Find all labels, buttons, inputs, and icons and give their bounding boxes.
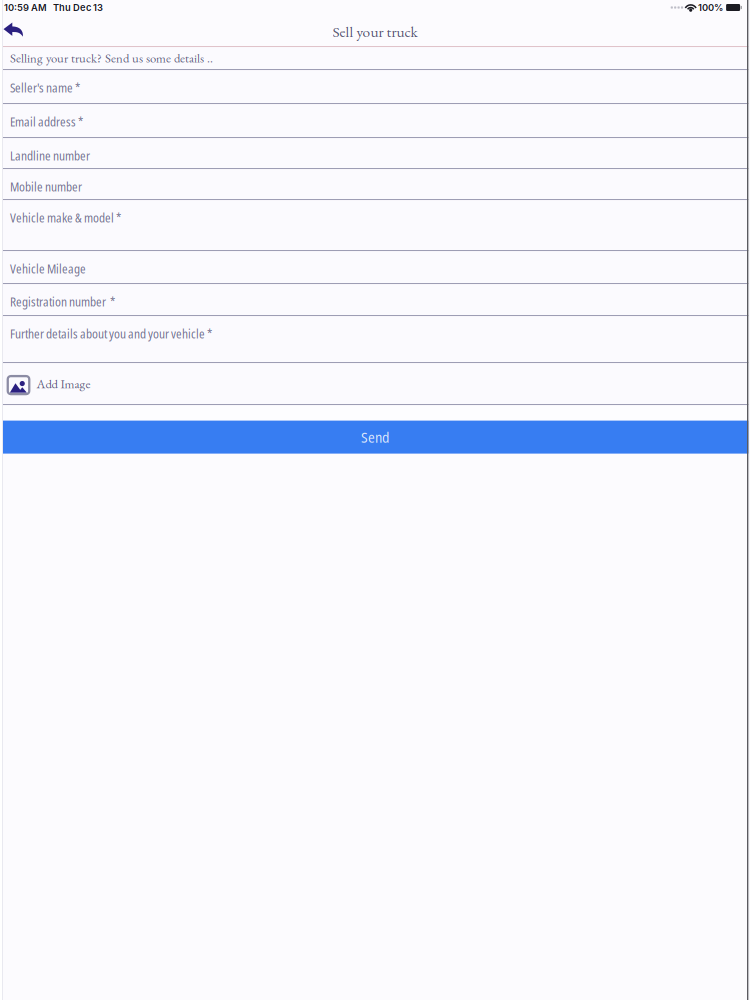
button[interactable]: Send [0,421,750,454]
staticText: Sell your truck [332,21,417,41]
staticText: 10:59 AM [4,2,47,13]
staticText: Further details about you and your vehic… [10,326,212,342]
button[interactable]: Mobile number [0,169,750,200]
staticText: Selling your truck? Send us some details… [10,50,213,66]
staticText: Add Image [36,375,90,392]
button[interactable]: Seller's name * [0,70,750,104]
button[interactable]: Back [0,19,31,44]
staticText: Registration number * [10,294,115,310]
button[interactable]: Registration number * [0,284,750,316]
button[interactable]: Selling your truck? Send us some details… [0,47,750,70]
staticText: Landline number [10,148,90,164]
staticText: Email address * [10,114,83,130]
staticText: Mobile number [10,179,82,195]
staticText: Vehicle Mileage [10,261,86,277]
button[interactable]: Vehicle make & model * [0,200,750,251]
button[interactable]: Email address * [0,104,750,138]
button[interactable]: Landline number [0,138,750,169]
button[interactable]: Further details about you and your vehic… [0,316,750,363]
staticText: 100% [696,2,723,13]
staticText: Vehicle make & model * [10,210,121,226]
button[interactable]: Add Image [0,363,750,405]
staticText: Seller's name * [10,80,80,96]
staticText: Thu Dec 13 [47,2,103,13]
button[interactable]: Vehicle Mileage [0,251,750,284]
staticText: Send [361,427,389,447]
